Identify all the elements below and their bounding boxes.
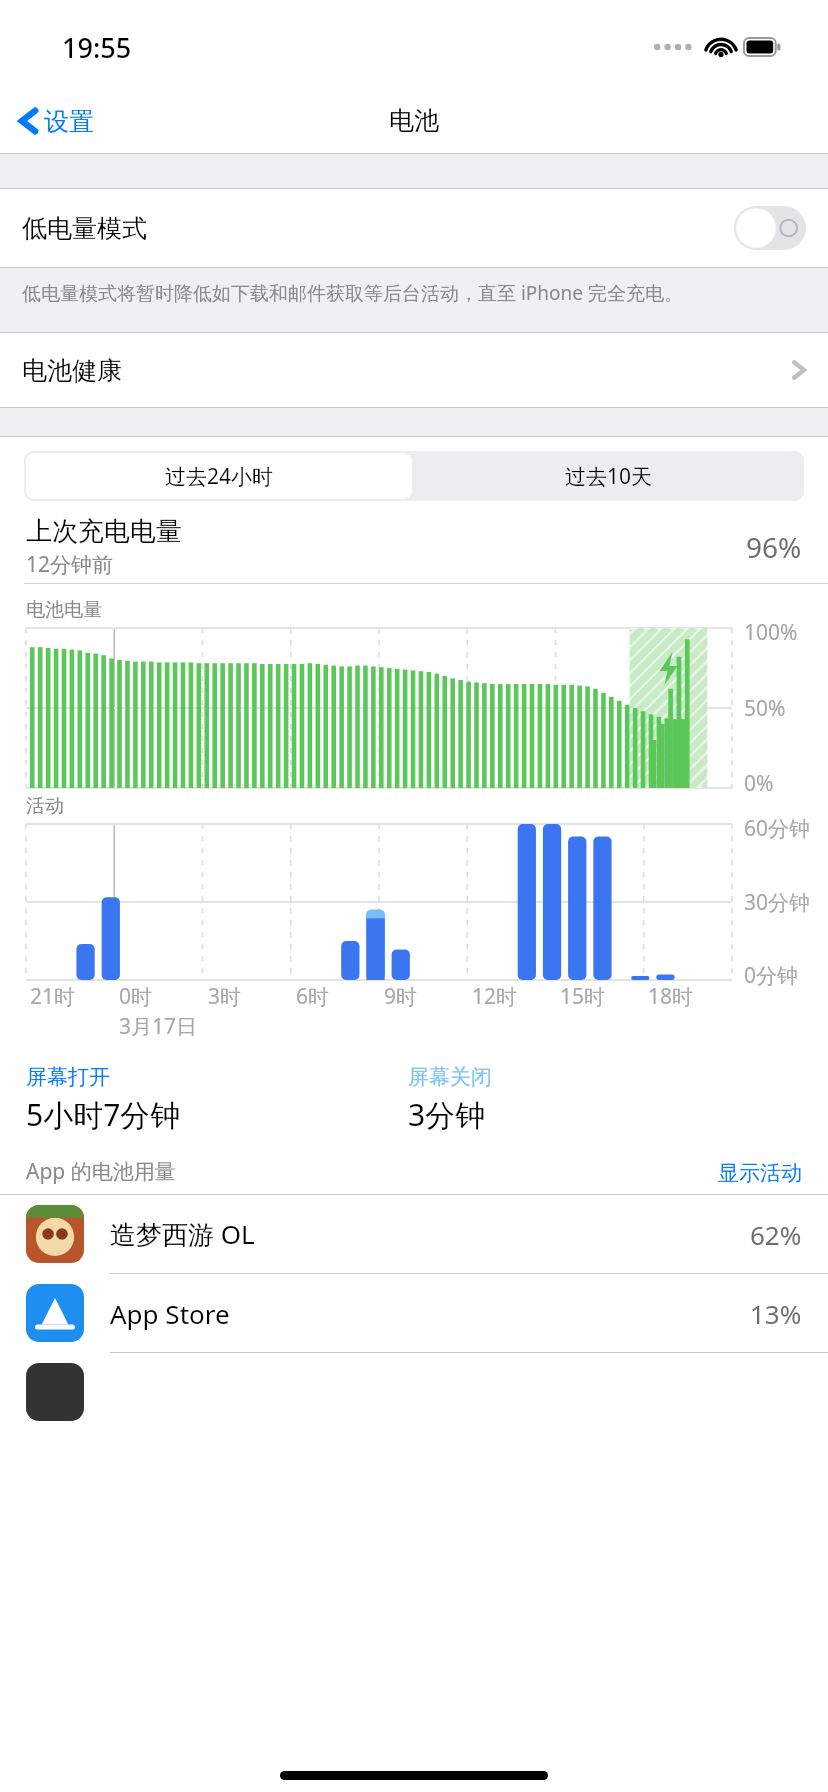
staticText: 21时 <box>30 982 76 1011</box>
staticText: App 的电池用量 <box>26 1157 176 1186</box>
button[interactable]: 设置 <box>0 98 106 144</box>
button[interactable]: 显示活动 <box>718 1160 802 1186</box>
staticText: 0时 <box>119 982 153 1011</box>
staticText: 3分钟 <box>408 1094 486 1135</box>
staticText: 电池 <box>389 105 439 136</box>
staticText: 62% <box>750 1217 802 1252</box>
staticText: 0分钟 <box>744 961 799 990</box>
staticText: 屏幕关闭 <box>408 1064 492 1090</box>
staticText: 显示活动 <box>718 1160 802 1186</box>
staticText: 12时 <box>472 982 518 1011</box>
staticText: 过去24小时 <box>165 462 274 491</box>
staticText: 5小时7分钟 <box>26 1094 181 1135</box>
staticText: 15时 <box>560 982 606 1011</box>
staticText: 活动 <box>26 794 64 818</box>
button[interactable] <box>0 1353 828 1431</box>
button[interactable]: 过去10天 <box>414 451 804 501</box>
staticText: 30分钟 <box>744 888 811 917</box>
staticText: 过去10天 <box>565 462 653 491</box>
button[interactable]: 造梦西游 OL <box>0 1195 828 1273</box>
staticText: 3月17日 <box>119 1012 198 1041</box>
staticText: 3时 <box>208 982 242 1011</box>
staticText: 设置 <box>44 106 94 137</box>
button[interactable]: 低电量模式 <box>0 189 828 267</box>
staticText: 上次充电电量 <box>26 515 182 548</box>
staticText: 18时 <box>648 982 694 1011</box>
staticText: 低电量模式 <box>22 213 147 244</box>
staticText: 100% <box>744 618 798 647</box>
staticText: 屏幕打开 <box>26 1064 110 1090</box>
staticText: App Store <box>110 1296 230 1331</box>
staticText: 50% <box>744 694 786 723</box>
staticText: 0% <box>744 769 774 798</box>
staticText: 96% <box>746 528 802 566</box>
button[interactable]: 低电量模式开关 <box>734 206 806 250</box>
button[interactable]: App Store <box>0 1274 828 1352</box>
staticText: 60分钟 <box>744 814 811 843</box>
button[interactable]: 过去24小时 <box>26 453 412 499</box>
button[interactable]: 电池健康 <box>0 333 828 407</box>
staticText: 9时 <box>384 982 418 1011</box>
staticText: 低电量模式将暂时降低如下载和邮件获取等后台活动，直至 iPhone 完全充电。 <box>22 280 683 306</box>
staticText: 电池电量 <box>26 598 102 622</box>
staticText: 12分钟前 <box>26 550 114 579</box>
staticText: 19:55 <box>62 29 132 66</box>
staticText: 13% <box>750 1296 802 1331</box>
staticText: 造梦西游 OL <box>110 1216 255 1252</box>
staticText: 6时 <box>296 982 330 1011</box>
staticText: 电池健康 <box>22 355 122 386</box>
